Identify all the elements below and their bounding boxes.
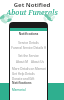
button[interactable]: More Details on Memorial	[12, 67, 46, 71]
button[interactable]: Notifications	[12, 81, 46, 85]
button[interactable]: Donate and Gift	[12, 77, 46, 81]
staticText: Get Notified	[0, 1, 64, 9]
button[interactable]: Funeral Service Details Here	[11, 46, 46, 50]
button[interactable]: Service Details	[10, 41, 47, 45]
button[interactable]: About Me	[16, 60, 28, 64]
button[interactable]: Notifications	[10, 32, 47, 36]
button[interactable]: Set the Service	[10, 54, 47, 58]
button[interactable]: About Us	[31, 60, 45, 64]
button[interactable]: Memorial	[12, 88, 46, 92]
staticText: About Funerals	[0, 8, 64, 18]
button[interactable]: Get Help Details	[12, 72, 46, 76]
